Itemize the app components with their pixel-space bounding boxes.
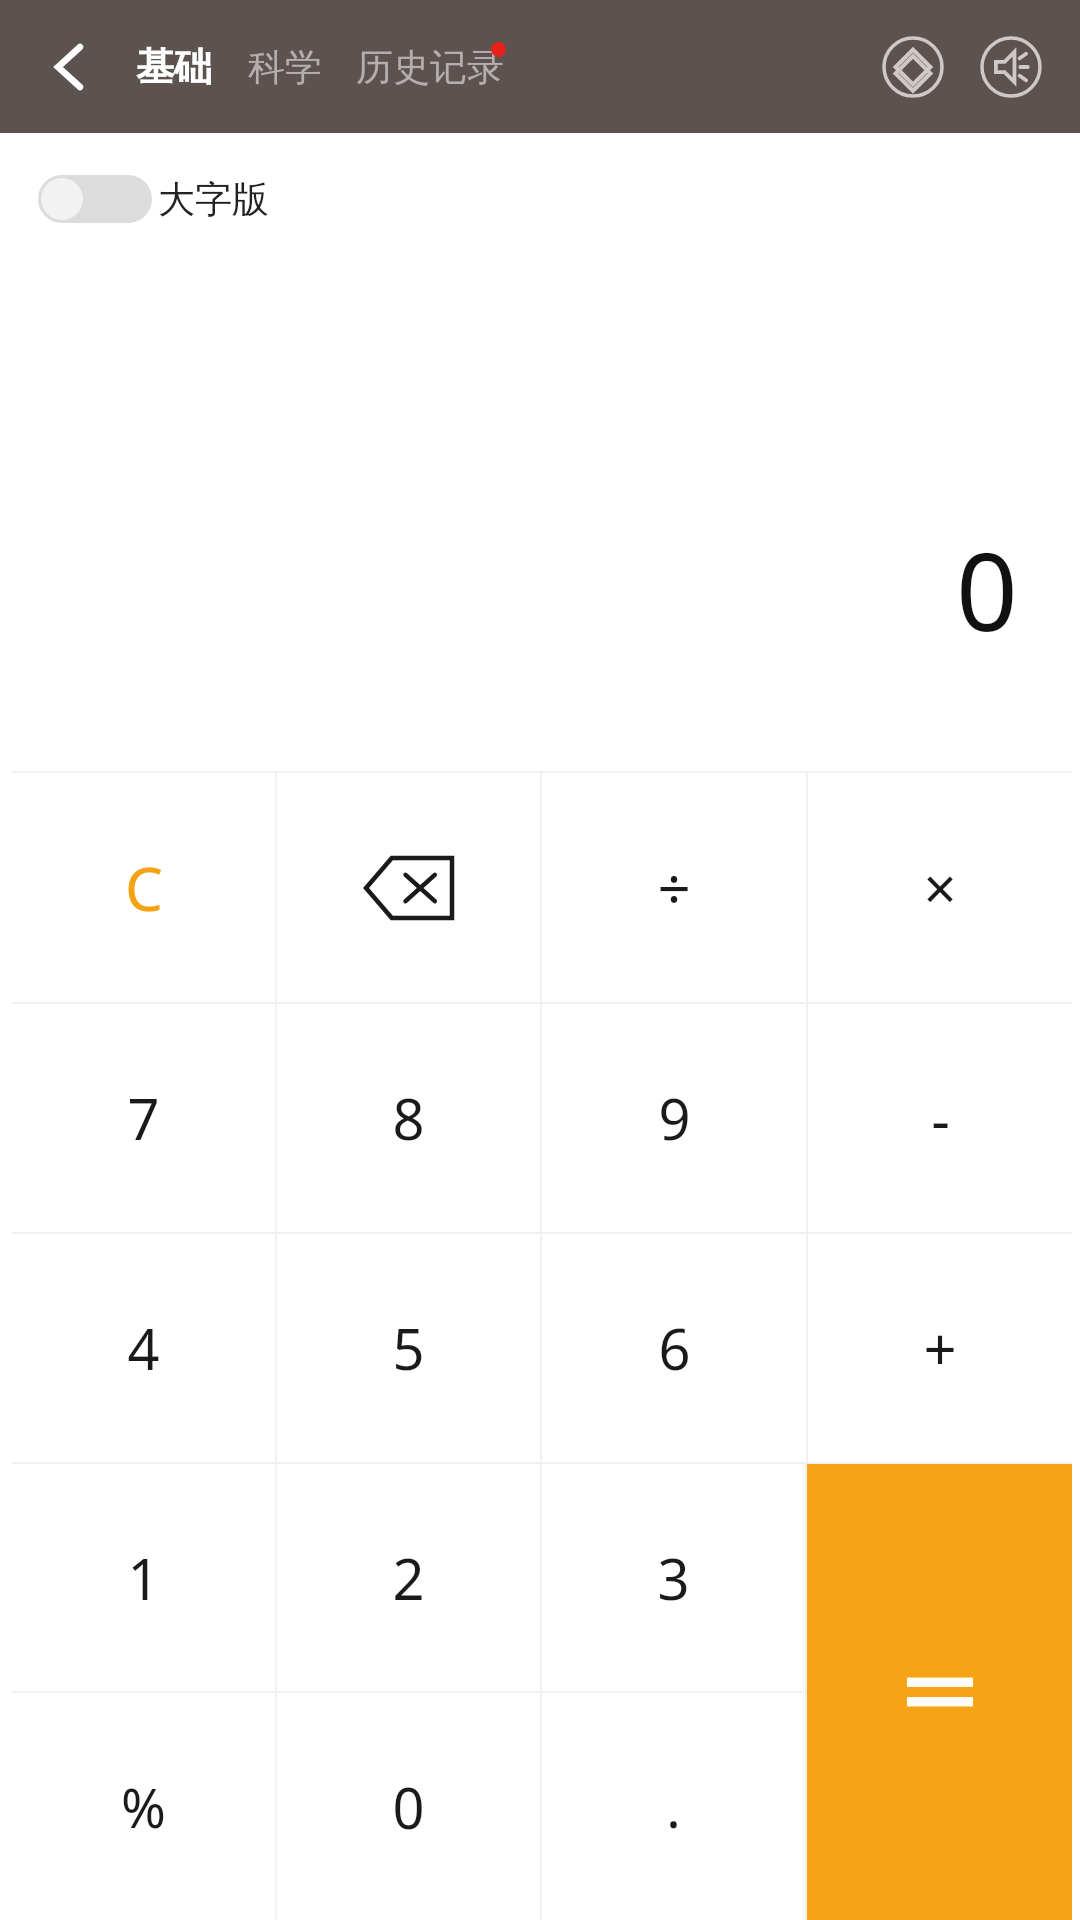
staticText: 大字版 xyxy=(158,176,269,223)
staticText: 0 xyxy=(392,1769,425,1845)
button[interactable]: 6 xyxy=(542,1234,806,1462)
button[interactable]: 科学 xyxy=(242,32,328,103)
staticText: × xyxy=(923,848,957,927)
button[interactable]: 1 xyxy=(12,1464,275,1691)
staticText: . xyxy=(666,1770,681,1844)
button[interactable]: 4 xyxy=(12,1234,275,1462)
button[interactable]: 8 xyxy=(277,1004,540,1232)
staticText: 7 xyxy=(127,1080,160,1156)
button[interactable]: 0 xyxy=(277,1693,540,1920)
button[interactable]: - xyxy=(808,1004,1072,1232)
staticText: 4 xyxy=(127,1310,160,1386)
button[interactable]: 大字版 xyxy=(38,175,269,223)
button[interactable]: 7 xyxy=(12,1004,275,1232)
staticText: 0 xyxy=(956,516,1018,663)
button[interactable]: Backspace xyxy=(277,773,540,1002)
staticText: ÷ xyxy=(657,848,691,927)
button[interactable]: . xyxy=(542,1693,805,1920)
staticText: - xyxy=(931,1079,950,1158)
button[interactable]: 5 xyxy=(277,1234,540,1462)
staticText: 9 xyxy=(658,1080,691,1156)
staticText: 8 xyxy=(392,1080,425,1156)
staticText: 5 xyxy=(392,1310,425,1386)
staticText: 6 xyxy=(658,1310,691,1386)
button[interactable]: 3 xyxy=(542,1464,805,1691)
staticText: 科学 xyxy=(248,44,322,91)
staticText: + xyxy=(923,1309,957,1388)
button[interactable]: × xyxy=(808,773,1072,1002)
staticText: 2 xyxy=(392,1540,425,1616)
button[interactable]: C xyxy=(12,773,275,1002)
staticText: 1 xyxy=(127,1540,160,1616)
button[interactable]: Equals xyxy=(807,1464,1072,1920)
staticText: % xyxy=(121,1770,166,1844)
button[interactable]: 9 xyxy=(542,1004,806,1232)
staticText: 历史记录 xyxy=(356,44,504,91)
button[interactable]: % xyxy=(12,1693,275,1920)
staticText: C xyxy=(125,847,163,929)
button[interactable]: ÷ xyxy=(542,773,806,1002)
staticText: 基础 xyxy=(136,43,212,91)
button[interactable]: 基础 xyxy=(130,31,218,103)
button[interactable]: Sound xyxy=(966,22,1056,112)
staticText: 3 xyxy=(657,1540,690,1616)
button[interactable]: 历史记录 xyxy=(350,32,510,103)
button[interactable]: Theme xyxy=(868,22,958,112)
button[interactable]: Back xyxy=(28,25,112,109)
button[interactable]: + xyxy=(808,1234,1072,1462)
button[interactable]: 2 xyxy=(277,1464,540,1691)
